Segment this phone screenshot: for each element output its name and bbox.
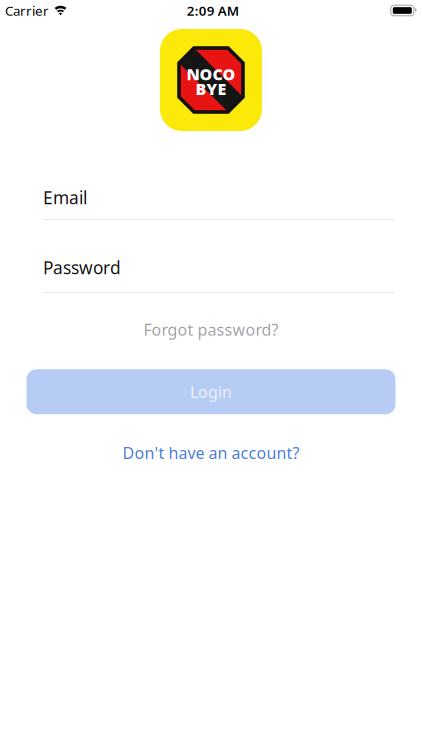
staticText: BYE [195,78,226,99]
staticText: Email [43,186,87,209]
staticText: NOCO [186,63,235,85]
button[interactable]: Don't have an account? [122,442,299,463]
button[interactable]: Forgot password? [143,319,278,340]
staticText: Don't have an account? [122,442,299,463]
staticText: Carrier [5,2,49,19]
staticText: Forgot password? [143,319,278,340]
staticText: Password [43,256,121,279]
button[interactable]: Login [0,369,422,414]
staticText: 2:09 AM [187,2,239,19]
staticText: Login [190,381,232,402]
button[interactable]: Password [0,256,422,293]
button[interactable]: Email [0,186,422,220]
